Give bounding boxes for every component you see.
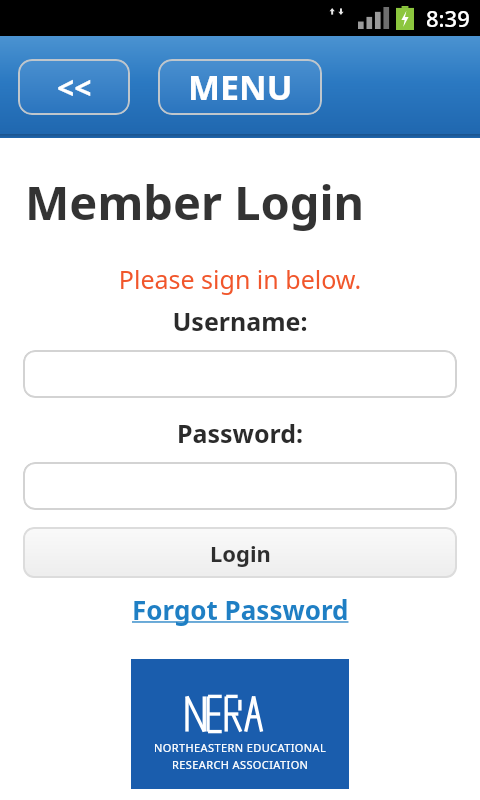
staticText: Username: (0, 304, 480, 338)
button[interactable]: Text input field (23, 462, 457, 510)
staticText: 8:39 (426, 3, 470, 33)
staticText: << (57, 67, 92, 108)
staticText: Member Login (25, 170, 365, 234)
staticText: Login (210, 538, 271, 568)
button[interactable]: Text input field (23, 350, 457, 398)
button[interactable]: Forgot Password (126, 590, 355, 629)
staticText: RESEARCH ASSOCIATION (172, 757, 309, 772)
staticText: NORTHEASTERN EDUCATIONAL (154, 740, 327, 755)
staticText: Password: (0, 416, 480, 450)
staticText: MENU (188, 64, 293, 110)
staticText: Please sign in below. (0, 262, 480, 296)
button[interactable]: NERA logo (131, 659, 349, 789)
staticText: Forgot Password (132, 592, 349, 627)
button[interactable]: MENU (158, 59, 322, 115)
button[interactable]: << (18, 59, 130, 115)
button[interactable]: Login (23, 527, 457, 578)
